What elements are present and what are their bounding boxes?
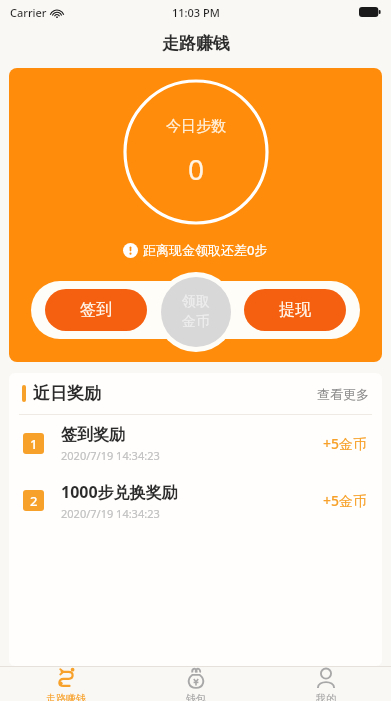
- button[interactable]: 1: [9, 415, 382, 472]
- staticText: 金币: [182, 313, 210, 331]
- button[interactable]: 我的: [261, 667, 391, 701]
- staticText: 我的: [316, 692, 336, 701]
- button[interactable]: 提现: [244, 289, 346, 331]
- button[interactable]: 走路赚钱: [0, 667, 131, 701]
- button[interactable]: 签到: [45, 289, 147, 331]
- staticText: 2: [30, 492, 38, 510]
- staticText: 1: [30, 435, 38, 453]
- staticText: 1000步兑换奖励: [61, 481, 178, 503]
- staticText: +5金币: [323, 491, 368, 510]
- button[interactable]: 领取: [161, 277, 231, 347]
- staticText: 提现: [279, 300, 311, 320]
- staticText: 2020/7/19 14:34:23: [61, 506, 160, 521]
- staticText: 11:03 PM: [172, 5, 220, 20]
- staticText: 2020/7/19 14:34:23: [61, 448, 160, 463]
- staticText: 领取: [182, 293, 210, 311]
- staticText: 走路赚钱: [46, 692, 86, 701]
- staticText: 今日步数: [166, 117, 226, 136]
- button[interactable]: 钱包: [131, 667, 261, 701]
- staticText: 钱包: [186, 692, 206, 701]
- staticText: Carrier: [10, 5, 47, 20]
- staticText: +5金币: [323, 434, 368, 453]
- staticText: 0: [188, 150, 205, 188]
- staticText: 签到: [80, 300, 112, 320]
- button[interactable]: 2: [9, 472, 382, 529]
- staticText: 签到奖励: [61, 425, 125, 445]
- staticText: 近日奖励: [33, 383, 101, 404]
- staticText: 距离现金领取还差0步: [143, 241, 268, 259]
- staticText: 查看更多: [317, 386, 369, 402]
- staticText: 走路赚钱: [162, 33, 230, 54]
- button[interactable]: 查看更多: [317, 386, 369, 402]
